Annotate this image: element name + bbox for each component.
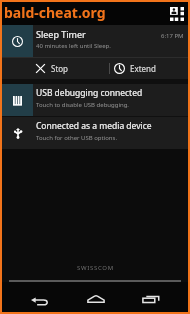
button[interactable]: Quick settings: [169, 6, 184, 21]
button[interactable]: Sleep Timer: [2, 25, 188, 57]
staticText: bald-cheat.org: [4, 3, 106, 22]
button[interactable]: Stop: [2, 58, 109, 79]
staticText: 40 minutes left until Sleep.: [36, 42, 111, 50]
staticText: Connected as a media device: [36, 120, 152, 132]
staticText: 6:17 PM: [161, 32, 184, 40]
button[interactable]: Extend: [110, 58, 188, 79]
staticText: Extend: [130, 63, 156, 74]
button[interactable]: USB debugging connected: [2, 84, 188, 116]
button[interactable]: Back: [27, 287, 53, 313]
staticText: Stop: [51, 63, 69, 74]
button[interactable]: Connected as a media device: [2, 117, 188, 149]
staticText: SWISSCOM: [77, 264, 114, 272]
staticText: Sleep Timer: [36, 28, 86, 40]
staticText: Touch to disable USB debugging.: [36, 101, 129, 109]
button[interactable]: Home: [83, 287, 109, 313]
button[interactable]: Recent apps: [138, 287, 164, 313]
staticText: Touch for other USB options.: [36, 134, 118, 142]
staticText: USB debugging connected: [36, 87, 143, 99]
